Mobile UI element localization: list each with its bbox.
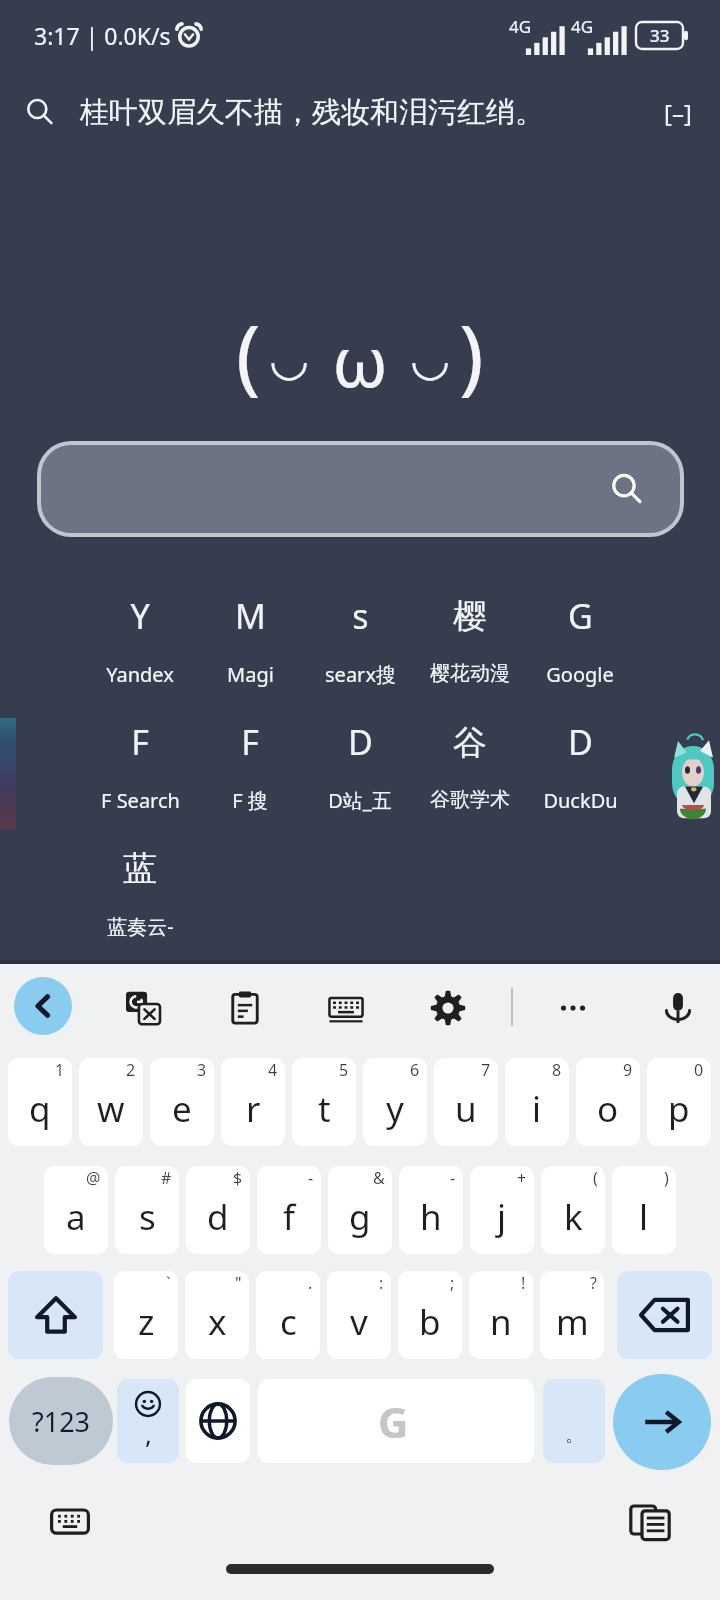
button[interactable]: : — [327, 1271, 391, 1359]
staticText: h — [420, 1193, 442, 1241]
button[interactable]: . — [256, 1271, 320, 1359]
button[interactable]: 6 — [363, 1058, 427, 1146]
button[interactable]: ?123 — [9, 1377, 113, 1465]
staticText: [–] — [664, 96, 692, 129]
staticText: i — [532, 1085, 542, 1133]
button[interactable]: Clipboard history — [622, 1494, 678, 1550]
staticText: ( — [593, 1167, 598, 1189]
button[interactable]: Clipboard — [216, 979, 274, 1037]
button[interactable]: - — [257, 1166, 321, 1254]
button[interactable]: ) — [612, 1166, 676, 1254]
button[interactable]: 2 — [79, 1058, 143, 1146]
button[interactable]: D — [305, 714, 415, 840]
staticText: 33 — [650, 24, 670, 47]
staticText: ◡ — [410, 332, 451, 386]
button[interactable]: F — [85, 714, 195, 840]
button[interactable]: ` — [114, 1271, 178, 1359]
staticText: r — [246, 1085, 261, 1133]
button[interactable]: 樱 — [415, 588, 525, 714]
staticText: 4 — [268, 1059, 278, 1081]
button[interactable]: # — [115, 1166, 179, 1254]
button[interactable]: Backspace — [617, 1271, 712, 1359]
staticText: " — [235, 1272, 242, 1294]
staticText: 谷歌学术 — [430, 787, 510, 812]
button[interactable]: 0 — [647, 1058, 711, 1146]
button[interactable]: 谷 — [415, 714, 525, 840]
button[interactable]: 5 — [292, 1058, 356, 1146]
staticText: 蓝奏云- — [107, 913, 174, 940]
staticText: : — [379, 1272, 384, 1294]
staticText: n — [490, 1298, 512, 1346]
staticText: . — [308, 1272, 313, 1294]
staticText: - — [450, 1167, 456, 1189]
button[interactable]: 7 — [434, 1058, 498, 1146]
button[interactable]: Period — [543, 1379, 605, 1463]
staticText: x — [208, 1298, 227, 1346]
button[interactable]: ( — [541, 1166, 605, 1254]
button[interactable]: Translate — [114, 979, 172, 1037]
staticText: 4G — [571, 15, 594, 38]
button[interactable]: D — [525, 714, 635, 840]
staticText: t — [318, 1085, 331, 1133]
staticText: p — [668, 1085, 690, 1133]
staticText: ) — [459, 297, 484, 409]
button[interactable]: F — [195, 714, 305, 840]
button[interactable]: Shift — [8, 1271, 103, 1359]
button[interactable]: s — [305, 588, 415, 714]
staticText: 3 — [197, 1059, 207, 1081]
button[interactable]: 8 — [505, 1058, 569, 1146]
button[interactable]: 蓝 — [85, 840, 195, 966]
button[interactable]: More — [544, 979, 602, 1037]
button[interactable]: G — [525, 588, 635, 714]
staticText: 6 — [410, 1059, 420, 1081]
button[interactable]: 4 — [221, 1058, 285, 1146]
button[interactable]: ; — [398, 1271, 462, 1359]
staticText: ; — [450, 1272, 455, 1294]
staticText: 桂叶双眉久不描，残妆和泪污红绡。 — [80, 94, 544, 131]
staticText: l — [639, 1193, 649, 1241]
button[interactable]: Search — [18, 90, 62, 134]
button[interactable]: @ — [44, 1166, 108, 1254]
button[interactable]: 9 — [576, 1058, 640, 1146]
staticText: 2 — [126, 1059, 136, 1081]
button[interactable]: + — [470, 1166, 534, 1254]
staticText: 蓝 — [123, 847, 157, 890]
button[interactable]: ? — [540, 1271, 604, 1359]
button[interactable]: Space — [258, 1379, 534, 1463]
button[interactable]: Voice input — [649, 979, 707, 1037]
button[interactable] — [41, 445, 680, 533]
button[interactable]: - — [399, 1166, 463, 1254]
button[interactable]: & — [328, 1166, 392, 1254]
staticText: ( — [236, 297, 261, 409]
staticText: searx搜 — [325, 661, 396, 688]
button[interactable]: Enter — [613, 1374, 711, 1470]
staticText: ` — [166, 1272, 171, 1294]
staticText: b — [419, 1298, 441, 1346]
button[interactable]: Y — [85, 588, 195, 714]
staticText: M — [235, 593, 266, 639]
button[interactable]: Keyboard layout — [317, 979, 375, 1037]
button[interactable]: Change language — [186, 1379, 250, 1463]
button[interactable]: 3 — [150, 1058, 214, 1146]
button[interactable]: Settings — [419, 979, 477, 1037]
staticText: D站_五 — [328, 787, 392, 814]
staticText: 谷 — [453, 721, 487, 764]
button[interactable]: Emoji and comma — [117, 1379, 179, 1463]
staticText: 5 — [339, 1059, 349, 1081]
button[interactable]: Hide keyboard — [42, 1494, 98, 1550]
button[interactable]: ! — [469, 1271, 533, 1359]
staticText: + — [517, 1167, 527, 1189]
button[interactable]: M — [195, 588, 305, 714]
button[interactable]: 1 — [8, 1058, 72, 1146]
button[interactable]: $ — [186, 1166, 250, 1254]
staticText: & — [373, 1167, 385, 1189]
staticText: 。 — [565, 1423, 584, 1447]
staticText: 4G — [509, 15, 532, 38]
button[interactable]: " — [185, 1271, 249, 1359]
staticText: o — [597, 1085, 619, 1133]
button[interactable]: Back — [14, 977, 72, 1035]
staticText: u — [455, 1085, 477, 1133]
staticText: a — [66, 1193, 86, 1241]
button[interactable]: Collapse — [656, 90, 700, 134]
staticText: c — [280, 1298, 297, 1346]
